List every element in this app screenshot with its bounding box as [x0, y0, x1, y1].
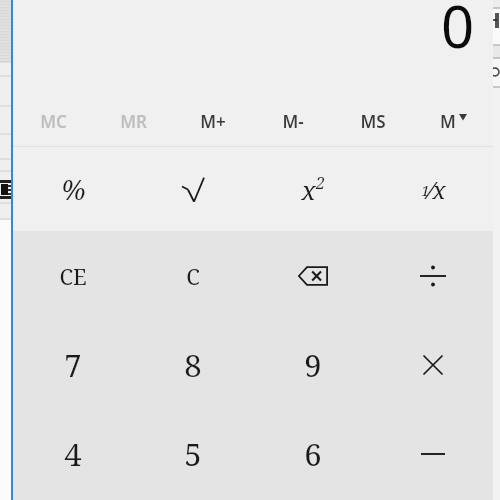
- button[interactable]: 9: [253, 320, 373, 409]
- button[interactable]: M+: [173, 96, 253, 146]
- button[interactable]: Backspace: [253, 231, 373, 320]
- button[interactable]: Minus: [373, 409, 493, 498]
- staticText: 7: [64, 344, 82, 386]
- staticText: 1: [421, 180, 430, 200]
- staticText: CE: [59, 261, 87, 291]
- staticText: C: [186, 261, 200, 291]
- staticText: 4: [64, 433, 82, 475]
- button[interactable]: M: [413, 96, 493, 146]
- staticText: 2: [316, 172, 325, 194]
- button[interactable]: 6: [253, 409, 373, 498]
- staticText: x: [301, 172, 316, 207]
- button[interactable]: x: [253, 147, 373, 231]
- staticText: 0: [441, 0, 475, 65]
- button[interactable]: 5: [133, 409, 253, 498]
- staticText: x: [432, 173, 446, 206]
- staticText: MS: [360, 110, 386, 133]
- button[interactable]: Divide: [373, 231, 493, 320]
- button[interactable]: Multiply: [373, 320, 493, 409]
- staticText: M-: [282, 110, 304, 133]
- staticText: ⁄: [430, 173, 432, 206]
- staticText: M: [440, 110, 456, 133]
- staticText: 5: [184, 433, 202, 475]
- button[interactable]: C: [133, 231, 253, 320]
- button[interactable]: Square root: [133, 147, 253, 231]
- button[interactable]: MC: [13, 96, 93, 146]
- button[interactable]: 4: [13, 409, 133, 498]
- button[interactable]: 8: [133, 320, 253, 409]
- button[interactable]: 7: [13, 320, 133, 409]
- staticText: %: [61, 171, 86, 208]
- button[interactable]: M-: [253, 96, 333, 146]
- staticText: 6: [304, 433, 322, 475]
- button[interactable]: MR: [93, 96, 173, 146]
- button[interactable]: %: [13, 147, 133, 231]
- button[interactable]: MS: [333, 96, 413, 146]
- staticText: 8: [184, 344, 202, 386]
- button[interactable]: CE: [13, 231, 133, 320]
- staticText: M+: [200, 110, 226, 133]
- staticText: 9: [304, 344, 322, 386]
- staticText: MC: [40, 110, 67, 133]
- button[interactable]: 1: [373, 147, 493, 231]
- staticText: MR: [120, 110, 147, 133]
